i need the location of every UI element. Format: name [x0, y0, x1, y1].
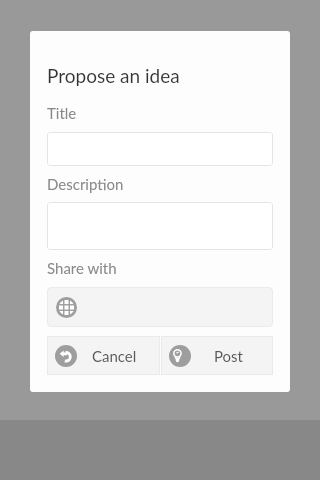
button[interactable]: Share audience: Public — [47, 287, 273, 327]
staticText: Description — [47, 175, 124, 193]
staticText: Title — [47, 104, 77, 122]
button[interactable]: Post — [161, 336, 273, 375]
button[interactable] — [47, 202, 273, 250]
staticText: Share with — [47, 259, 117, 277]
staticText: Cancel — [92, 347, 137, 365]
staticText: Post — [214, 347, 243, 365]
staticText: Propose an idea — [47, 64, 180, 87]
button[interactable] — [47, 132, 273, 166]
button[interactable]: Cancel — [47, 336, 160, 375]
